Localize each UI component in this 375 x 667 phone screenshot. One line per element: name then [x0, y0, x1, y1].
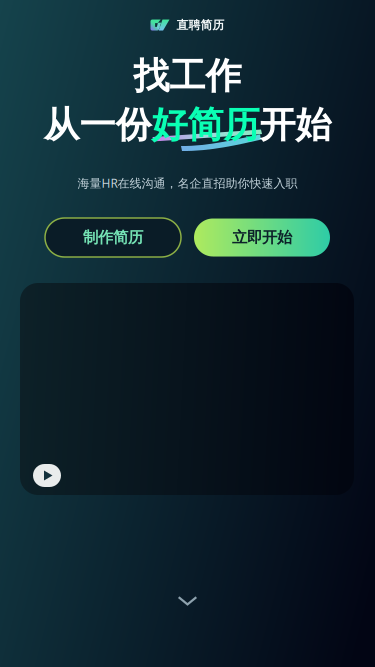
staticText: 开始 — [259, 102, 331, 148]
staticText: 找工作 — [133, 53, 241, 99]
button[interactable]: 立即开始 — [194, 218, 330, 256]
button[interactable]: Scroll down — [165, 584, 209, 618]
button[interactable]: 制作简历 — [45, 218, 181, 257]
button[interactable]: Play video — [33, 464, 61, 487]
staticText: 直聘简历 — [176, 18, 224, 32]
staticText: 海量HR在线沟通，名企直招助你快速入职 — [77, 175, 297, 191]
staticText: 制作简历 — [83, 228, 143, 247]
staticText: 好简历 — [151, 102, 259, 148]
staticText: 从一份 — [43, 102, 151, 148]
staticText: 立即开始 — [232, 228, 292, 247]
